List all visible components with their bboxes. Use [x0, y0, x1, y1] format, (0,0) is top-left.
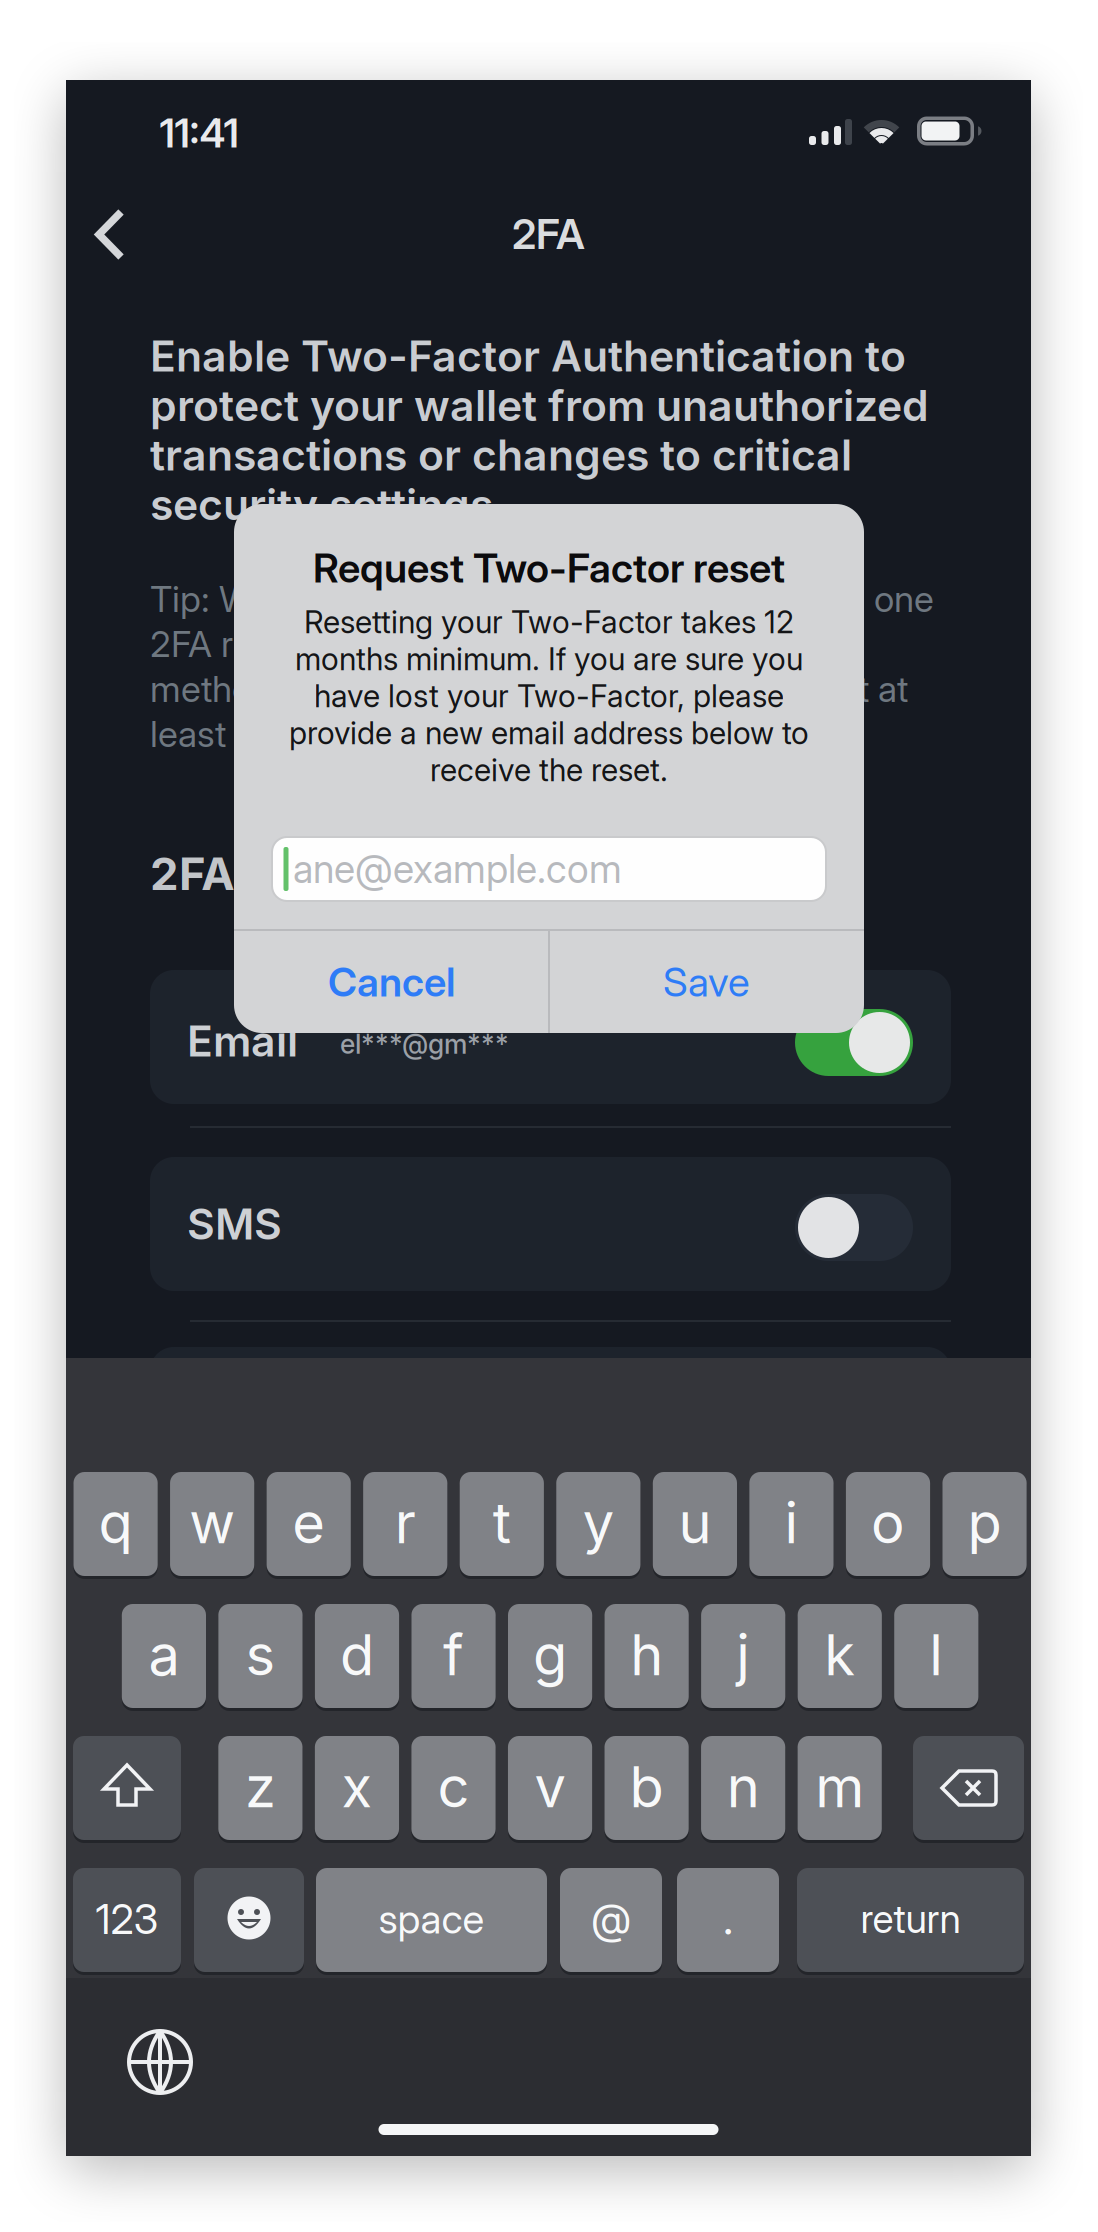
- staticText: have lost your Two-Factor, please: [314, 677, 784, 714]
- staticText: transactions or changes to critical: [150, 429, 852, 481]
- staticText: security settings.: [150, 479, 507, 530]
- staticText: e: [292, 1489, 325, 1557]
- button[interactable]: r: [363, 1470, 447, 1578]
- button[interactable]: z: [218, 1734, 302, 1842]
- button[interactable]: u: [653, 1470, 737, 1578]
- staticText: more than one: [703, 577, 934, 621]
- button[interactable]: c: [411, 1734, 496, 1842]
- button[interactable]: 123: [73, 1866, 181, 1974]
- staticText: months minimum. If you are sure you: [295, 640, 803, 677]
- staticText: t: [493, 1489, 511, 1557]
- staticText: ane@example.com: [293, 846, 622, 892]
- button[interactable]: Shift: [73, 1736, 181, 1840]
- button[interactable]: Back: [75, 199, 145, 269]
- button[interactable]: p: [942, 1470, 1027, 1578]
- button[interactable]: .: [677, 1866, 779, 1974]
- staticText: Enable Two-Factor Authentication to: [150, 330, 906, 382]
- button[interactable]: Email address: [271, 836, 827, 902]
- staticText: Save: [663, 958, 750, 1006]
- staticText: f: [443, 1621, 464, 1689]
- button[interactable]: y: [556, 1470, 640, 1578]
- staticText: least one other method.: [150, 712, 528, 756]
- button[interactable]: d: [315, 1602, 399, 1710]
- staticText: 2FA recovery method. If you lose: [150, 622, 675, 666]
- staticText: n: [727, 1753, 760, 1821]
- staticText: 2FA: [512, 209, 585, 259]
- button[interactable]: o: [846, 1470, 930, 1578]
- button[interactable]: Emoji: [194, 1868, 304, 1972]
- staticText: return: [860, 1896, 960, 1942]
- button[interactable]: e: [267, 1470, 351, 1578]
- staticText: v: [534, 1753, 565, 1821]
- button[interactable]: Next keyboard: [120, 2022, 200, 2102]
- staticText: d: [340, 1621, 374, 1689]
- button[interactable]: return: [797, 1866, 1024, 1974]
- staticText: h: [630, 1621, 663, 1689]
- button[interactable]: h: [604, 1602, 689, 1710]
- staticText: u: [678, 1489, 711, 1557]
- staticText: @: [590, 1893, 631, 1945]
- button[interactable]: Email: [795, 1009, 913, 1076]
- button[interactable]: Save: [550, 931, 863, 1033]
- staticText: g: [533, 1621, 567, 1689]
- button[interactable]: b: [604, 1734, 689, 1842]
- staticText: j: [736, 1621, 750, 1689]
- staticText: 123: [95, 1894, 158, 1944]
- staticText: y: [583, 1489, 614, 1557]
- staticText: SMS: [187, 1198, 282, 1250]
- staticText: Cancel: [328, 958, 455, 1006]
- staticText: l: [929, 1621, 943, 1689]
- staticText: i: [784, 1489, 798, 1557]
- staticText: o: [871, 1489, 905, 1557]
- staticText: z: [245, 1753, 276, 1821]
- staticText: protect your wallet from unauthorized: [150, 380, 929, 431]
- staticText: 11:41: [159, 109, 238, 157]
- button[interactable]: j: [701, 1602, 785, 1710]
- staticText: q: [99, 1489, 133, 1557]
- button[interactable]: n: [701, 1734, 785, 1842]
- staticText: Resetting your Two-Factor takes 12: [304, 603, 794, 640]
- button[interactable]: m: [798, 1734, 882, 1842]
- staticText: w: [189, 1489, 235, 1557]
- staticText: x: [341, 1753, 372, 1821]
- staticText: request at: [747, 667, 908, 711]
- staticText: k: [824, 1621, 855, 1689]
- staticText: p: [967, 1489, 1001, 1557]
- button[interactable]: k: [798, 1602, 882, 1710]
- button[interactable]: space: [316, 1866, 547, 1974]
- staticText: Email: [187, 1015, 298, 1067]
- button[interactable]: w: [170, 1470, 254, 1578]
- button[interactable]: i: [749, 1470, 834, 1578]
- button[interactable]: l: [894, 1602, 978, 1710]
- button[interactable]: Delete: [913, 1736, 1024, 1840]
- staticText: space: [378, 1895, 484, 1943]
- button[interactable]: a: [122, 1602, 206, 1710]
- button[interactable]: q: [73, 1470, 158, 1578]
- staticText: r: [395, 1489, 416, 1557]
- button[interactable]: t: [460, 1470, 544, 1578]
- staticText: b: [630, 1753, 664, 1821]
- button[interactable]: f: [411, 1602, 496, 1710]
- button[interactable]: x: [315, 1734, 399, 1842]
- staticText: .: [722, 1893, 734, 1945]
- staticText: receive the reset.: [430, 751, 668, 788]
- button[interactable]: SMS: [795, 1194, 913, 1261]
- staticText: m: [815, 1753, 864, 1821]
- button[interactable]: g: [508, 1602, 592, 1710]
- staticText: s: [245, 1621, 275, 1689]
- staticText: Tip: We strongly recommend: [150, 577, 613, 621]
- staticText: method, you can still use another: [150, 667, 677, 711]
- staticText: Request Two-Factor reset: [313, 544, 785, 592]
- staticText: c: [437, 1753, 469, 1821]
- button[interactable]: @: [560, 1866, 662, 1974]
- staticText: el***@gm***: [340, 1028, 509, 1060]
- button[interactable]: Cancel: [235, 931, 548, 1033]
- staticText: provide a new email address below to: [289, 714, 809, 751]
- staticText: a: [148, 1621, 179, 1689]
- button[interactable]: s: [218, 1602, 302, 1710]
- staticText: 2FA: [150, 847, 235, 901]
- button[interactable]: v: [508, 1734, 592, 1842]
